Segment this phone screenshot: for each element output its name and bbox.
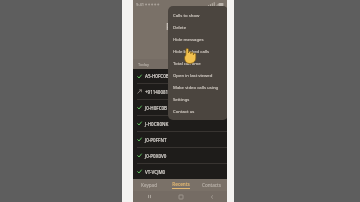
button[interactable]: A5-H0FC0B (133, 69, 227, 83)
button[interactable]: Hide messages (168, 33, 228, 45)
button[interactable]: J0-P0FFNT (133, 132, 227, 147)
button[interactable]: Recent apps (133, 191, 165, 202)
button[interactable]: J0-H0FC0B (133, 100, 227, 115)
button[interactable]: J0-P0X0V0 (133, 148, 227, 163)
button[interactable]: J-H0CR0NK (133, 116, 227, 131)
button[interactable]: Keypad (133, 179, 165, 191)
staticText: Keypad (141, 182, 157, 188)
button[interactable]: Home (165, 191, 196, 202)
button[interactable]: Calls to show (168, 9, 228, 21)
staticText: Open in last viewed (173, 72, 213, 78)
staticText: J0-P0X0V0 (145, 153, 167, 159)
staticText: Delete (173, 24, 187, 30)
staticText: 9:41 (136, 2, 144, 7)
button[interactable]: Back (196, 191, 227, 202)
staticText: Hide messages (173, 36, 204, 42)
staticText: Settings (173, 96, 190, 102)
staticText: Contact us (173, 108, 195, 114)
staticText: A5-H0FC0B (145, 73, 169, 79)
staticText: +911400811 (145, 89, 171, 95)
staticText: J0-H0FC0B (145, 105, 168, 111)
button[interactable]: Make video calls using (168, 81, 228, 93)
staticText: Phone (166, 20, 194, 32)
button[interactable]: Delete (168, 21, 228, 33)
button[interactable]: Open in last viewed (168, 69, 228, 81)
other: Touch pointer (183, 48, 197, 64)
button[interactable]: +911400811 (133, 84, 227, 99)
staticText: Contacts (202, 182, 221, 188)
staticText: J-H0CR0NK (145, 121, 169, 127)
button[interactable]: Hide blocked calls (168, 45, 228, 57)
button[interactable]: Total call time (168, 57, 228, 69)
button[interactable]: Recents (165, 179, 196, 191)
button[interactable]: VT-VCJM0 (133, 164, 227, 179)
staticText: Total call time (173, 60, 201, 66)
staticText: Today (138, 62, 150, 67)
button[interactable]: Settings (168, 93, 228, 105)
staticText: Recents (172, 181, 190, 187)
staticText: VT-VCJM0 (145, 169, 166, 175)
button[interactable]: Contact us (168, 105, 228, 117)
button[interactable]: Contacts (196, 179, 227, 191)
staticText: Hide blocked calls (173, 48, 210, 54)
staticText: Calls to show (173, 12, 200, 18)
staticText: Make video calls using (173, 84, 219, 90)
staticText: J0-P0FFNT (145, 137, 167, 143)
